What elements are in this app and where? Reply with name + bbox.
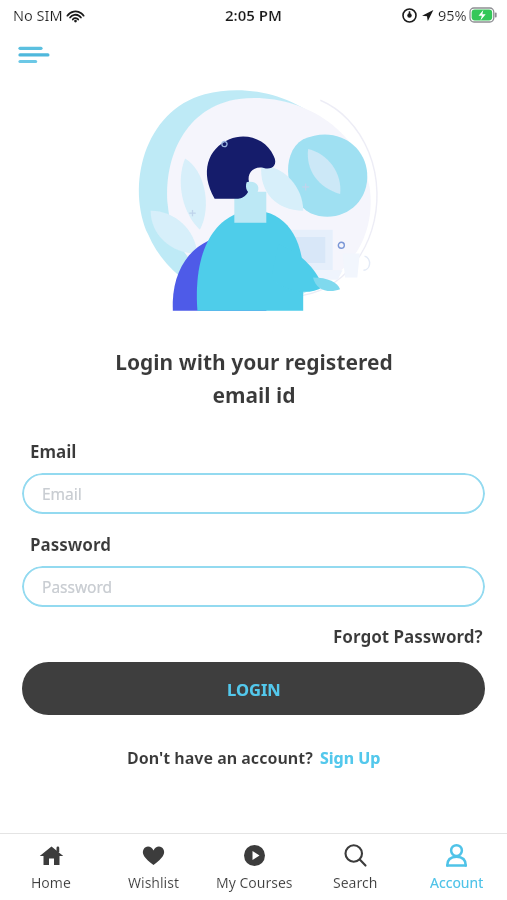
button[interactable]: Menu — [14, 35, 56, 77]
staticText: Sign Up — [320, 747, 381, 769]
button[interactable]: Password — [22, 566, 485, 607]
staticText: LOGIN — [227, 678, 281, 700]
button[interactable]: LOGIN — [22, 662, 485, 715]
button[interactable]: Search — [305, 834, 406, 900]
button[interactable]: My Courses — [204, 834, 305, 900]
staticText: Don't have an account? — [127, 747, 313, 769]
staticText: Password — [30, 533, 111, 556]
button[interactable]: Forgot Password? — [331, 623, 485, 650]
staticText: 95% — [438, 5, 467, 25]
staticText: Wishlist — [128, 873, 179, 892]
staticText: Search — [333, 873, 378, 892]
staticText: Email — [30, 440, 77, 463]
staticText: 2:05 PM — [225, 5, 282, 25]
staticText: Password — [42, 576, 113, 597]
button[interactable]: Account — [406, 834, 507, 900]
button[interactable]: Sign Up — [320, 747, 381, 769]
staticText: Email — [42, 483, 82, 504]
staticText: No SIM — [13, 5, 63, 25]
staticText: email id — [212, 381, 296, 410]
button[interactable]: Email — [22, 473, 485, 514]
staticText: Account — [430, 873, 484, 892]
staticText: Home — [31, 873, 71, 892]
staticText: My Courses — [216, 873, 293, 892]
staticText: Login with your registered — [115, 348, 393, 377]
button[interactable]: Home — [0, 834, 102, 900]
button[interactable]: Wishlist — [102, 834, 204, 900]
staticText: Forgot Password? — [333, 625, 483, 648]
